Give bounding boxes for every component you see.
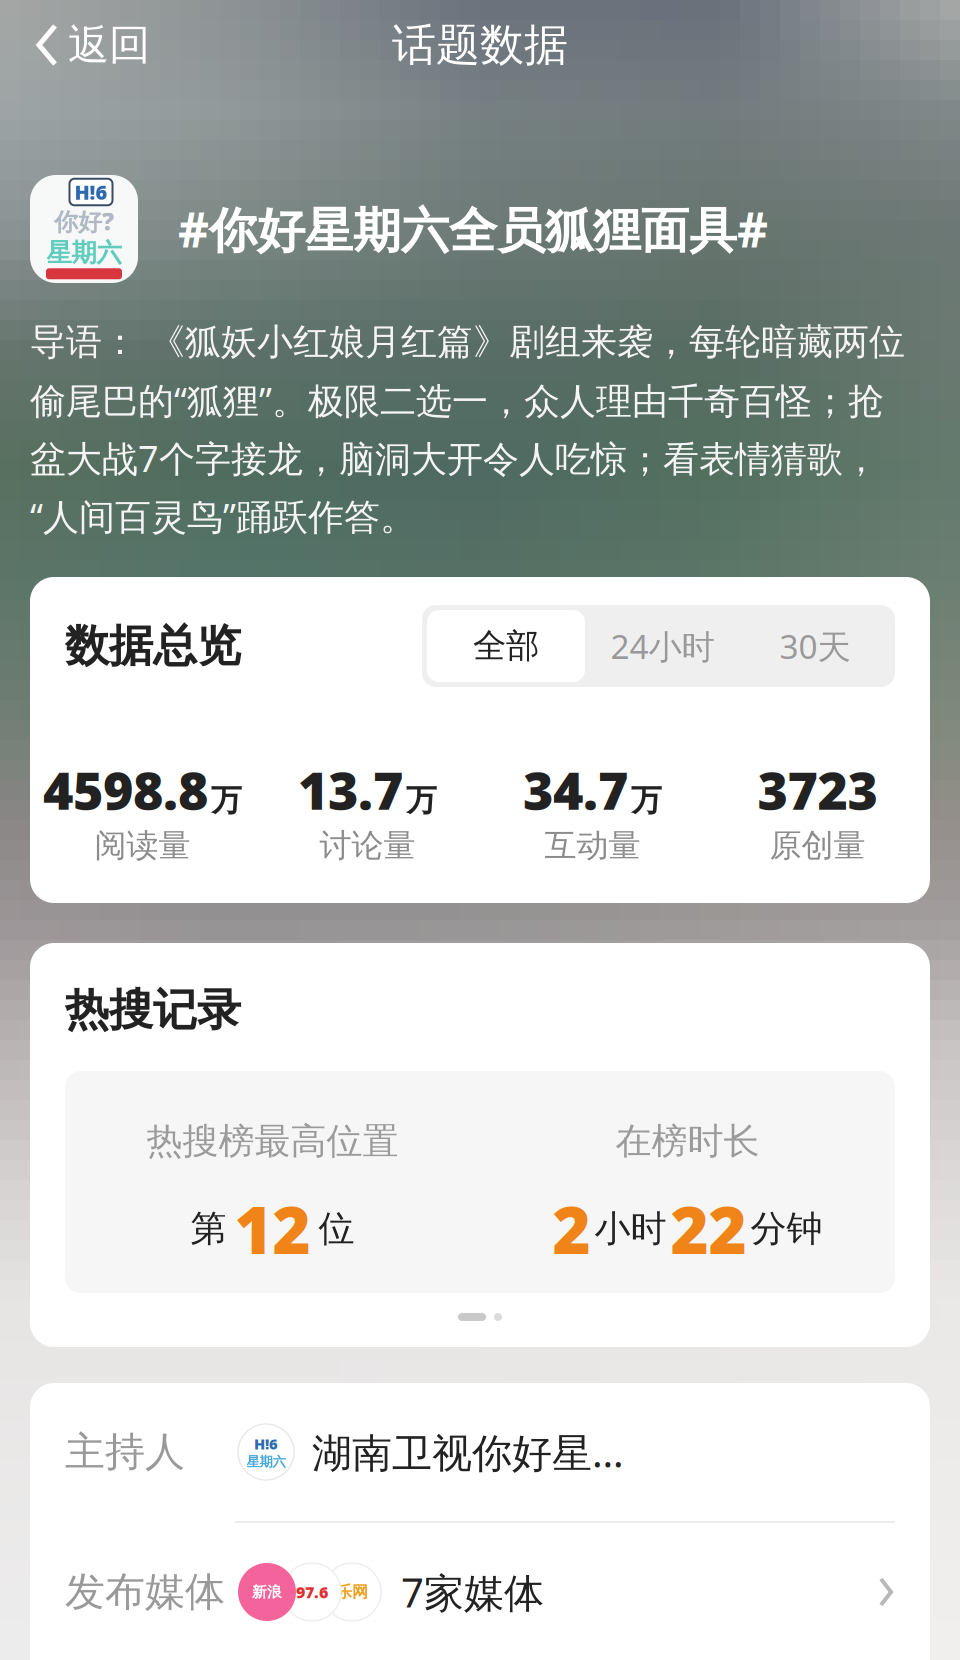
staticText: 原创量: [769, 826, 865, 865]
button[interactable]: 全部: [427, 610, 585, 682]
button[interactable]: 返回: [34, 20, 150, 70]
button[interactable]: 30天: [740, 610, 890, 682]
staticText: 话题数据: [392, 18, 568, 72]
staticText: “人间百灵鸟”踊跃作答。: [30, 492, 416, 540]
button[interactable]: 主持人: [30, 1383, 930, 1521]
staticText: 湖南卫视你好星…: [312, 1425, 624, 1478]
staticText: 7家媒体: [401, 1565, 544, 1618]
staticText: 阅读量: [94, 826, 190, 865]
staticText: 星期六: [246, 1454, 285, 1470]
staticText: 4598.8: [43, 755, 208, 824]
staticText: 全部: [473, 625, 539, 666]
staticText: 13.7: [298, 755, 403, 824]
staticText: 热搜榜最高位置: [146, 1119, 398, 1163]
staticText: 97.6: [296, 1581, 328, 1603]
staticText: 30天: [779, 624, 850, 668]
staticText: 2: [552, 1185, 590, 1272]
staticText: H!6: [254, 1434, 278, 1454]
staticText: 22: [670, 1185, 746, 1272]
staticText: 新浪: [252, 1583, 282, 1601]
staticText: 互动量: [544, 826, 640, 865]
staticText: 12: [234, 1185, 310, 1272]
staticText: 在榜时长: [615, 1119, 759, 1163]
staticText: 偷尾巴的“狐狸”。极限二选一，众人理由千奇百怪；抢: [30, 376, 884, 424]
staticText: 万: [211, 781, 242, 819]
staticText: 数据总览: [65, 619, 241, 673]
staticText: 讨论量: [319, 826, 415, 865]
staticText: 盆大战7个字接龙，脑洞大开令人吃惊；看表情猜歌，: [30, 434, 879, 482]
staticText: 返回: [68, 20, 150, 70]
staticText: 万: [631, 781, 662, 819]
button[interactable]: 24小时: [585, 610, 740, 682]
staticText: 主持人: [65, 1427, 185, 1476]
staticText: 分钟: [750, 1206, 822, 1251]
button[interactable]: 发布媒体: [30, 1523, 930, 1660]
staticText: 小时: [594, 1206, 666, 1251]
staticText: 发布媒体: [65, 1567, 225, 1616]
staticText: #你好星期六全员狐狸面具#: [178, 197, 768, 261]
staticText: 你好?: [54, 205, 114, 237]
staticText: 热搜记录: [65, 983, 241, 1037]
staticText: 3723: [757, 755, 877, 824]
staticText: 34.7: [523, 755, 628, 824]
staticText: 第: [190, 1206, 226, 1251]
staticText: 万: [406, 781, 437, 819]
staticText: 乐网: [336, 1582, 368, 1602]
staticText: 导语： 《狐妖小红娘月红篇》剧组来袭，每轮暗藏两位: [30, 320, 905, 364]
staticText: H!6: [74, 179, 107, 205]
staticText: 位: [318, 1206, 354, 1251]
staticText: 24小时: [610, 624, 714, 668]
staticText: 星期六: [46, 237, 121, 268]
